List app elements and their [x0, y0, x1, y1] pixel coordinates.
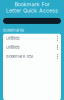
- staticText: Bookmarks: [3, 28, 24, 33]
- button[interactable]: Untitled: [3, 43, 61, 52]
- staticText: Bookmark For: [14, 1, 49, 7]
- staticText: Untitled: [6, 36, 19, 41]
- button[interactable]: Untitled: [3, 34, 61, 43]
- button[interactable]: Bookmark Test: [3, 52, 61, 61]
- staticText: Untitled: [6, 45, 19, 50]
- staticText: Bookmark Test: [6, 54, 33, 59]
- staticText: Letter Quick Access: [6, 7, 58, 14]
